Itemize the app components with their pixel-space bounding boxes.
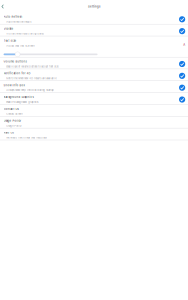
- staticText: Enable background graphics: [6, 101, 38, 104]
- staticText: Always show help info box during startup: [6, 89, 54, 92]
- button[interactable]: Volume Buttons: [0, 57, 188, 69]
- staticText: Background Graphics: [4, 95, 34, 99]
- staticText: Auto refresh the results: [6, 20, 31, 23]
- button[interactable]: Text Size: [0, 36, 188, 57]
- staticText: We would love to hear your feedback!: [6, 136, 47, 139]
- staticText: Text Size: [4, 39, 17, 42]
- button[interactable]: Notification for 4D: [0, 69, 188, 81]
- button[interactable]: Rate Us: [0, 128, 188, 140]
- staticText: Contact us here: [6, 112, 22, 115]
- staticText: Enable use of volume buttons to adjust f…: [6, 65, 58, 68]
- button[interactable]: Background Graphics: [0, 93, 188, 105]
- button[interactable]: Contact Us: [0, 105, 188, 116]
- button[interactable]: Show Info Box: [0, 81, 188, 93]
- staticText: Vibrate: [4, 27, 14, 30]
- staticText: Notify me when new 4D results are availa…: [6, 77, 56, 80]
- staticText: Contact Us: [4, 107, 19, 110]
- staticText: Notification for 4D: [4, 72, 31, 75]
- staticText: Volume Buttons: [4, 60, 27, 63]
- staticText: Adjust your text size here: [6, 44, 34, 47]
- button[interactable]: Vibrate: [0, 24, 188, 36]
- button[interactable]: Auto Refresh: [0, 13, 188, 24]
- staticText: Usage Policy: [4, 119, 21, 122]
- staticText: Usage Policy: [6, 124, 21, 127]
- staticText: Auto Refresh: [4, 15, 23, 18]
- staticText: Rate Us: [4, 131, 14, 134]
- staticText: Show Info Box: [4, 84, 25, 87]
- staticText: Vibrate when results are updated: [6, 32, 44, 35]
- button[interactable]: Usage Policy: [0, 116, 188, 128]
- staticText: Settings: [88, 5, 100, 8]
- staticText: A: [183, 43, 185, 47]
- button[interactable]: Back: [0, 3, 7, 10]
